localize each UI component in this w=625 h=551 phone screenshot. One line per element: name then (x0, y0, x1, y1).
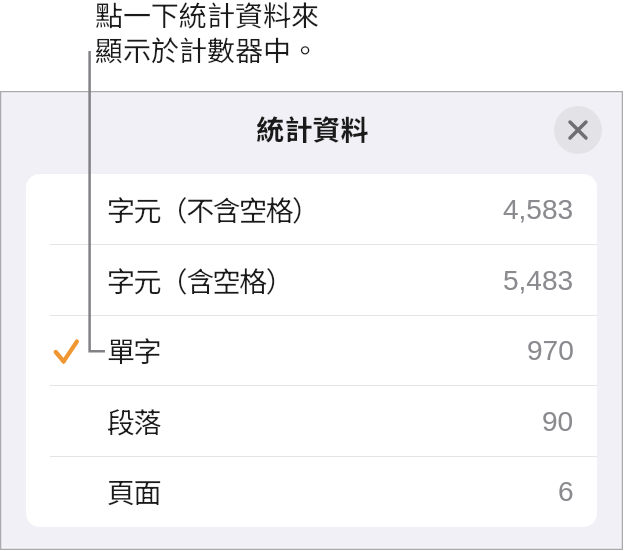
staticText: 點一下統計資料來 顯示於計數器中。 (95, 0, 320, 69)
button[interactable]: 段落 (26, 386, 597, 457)
button[interactable]: Close (554, 106, 602, 154)
staticText: 90 (542, 406, 574, 437)
button[interactable]: 字元（不含空格） (26, 174, 597, 245)
staticText: 頁面 (107, 471, 160, 512)
staticText: 5,483 (503, 265, 574, 296)
staticText: 單字 (107, 330, 160, 371)
staticText: 統計資料 (256, 108, 369, 149)
button[interactable]: 字元（含空格） (26, 245, 597, 316)
button[interactable]: 頁面 (26, 456, 597, 527)
staticText: 段落 (107, 401, 160, 442)
staticText: 字元（含空格） (107, 260, 292, 301)
staticText: 970 (527, 335, 574, 366)
staticText: 6 (558, 476, 574, 507)
staticText: 4,583 (503, 194, 574, 225)
other: Selected (54, 338, 80, 364)
staticText: 字元（不含空格） (107, 189, 319, 230)
button[interactable]: 單字 (26, 315, 597, 386)
